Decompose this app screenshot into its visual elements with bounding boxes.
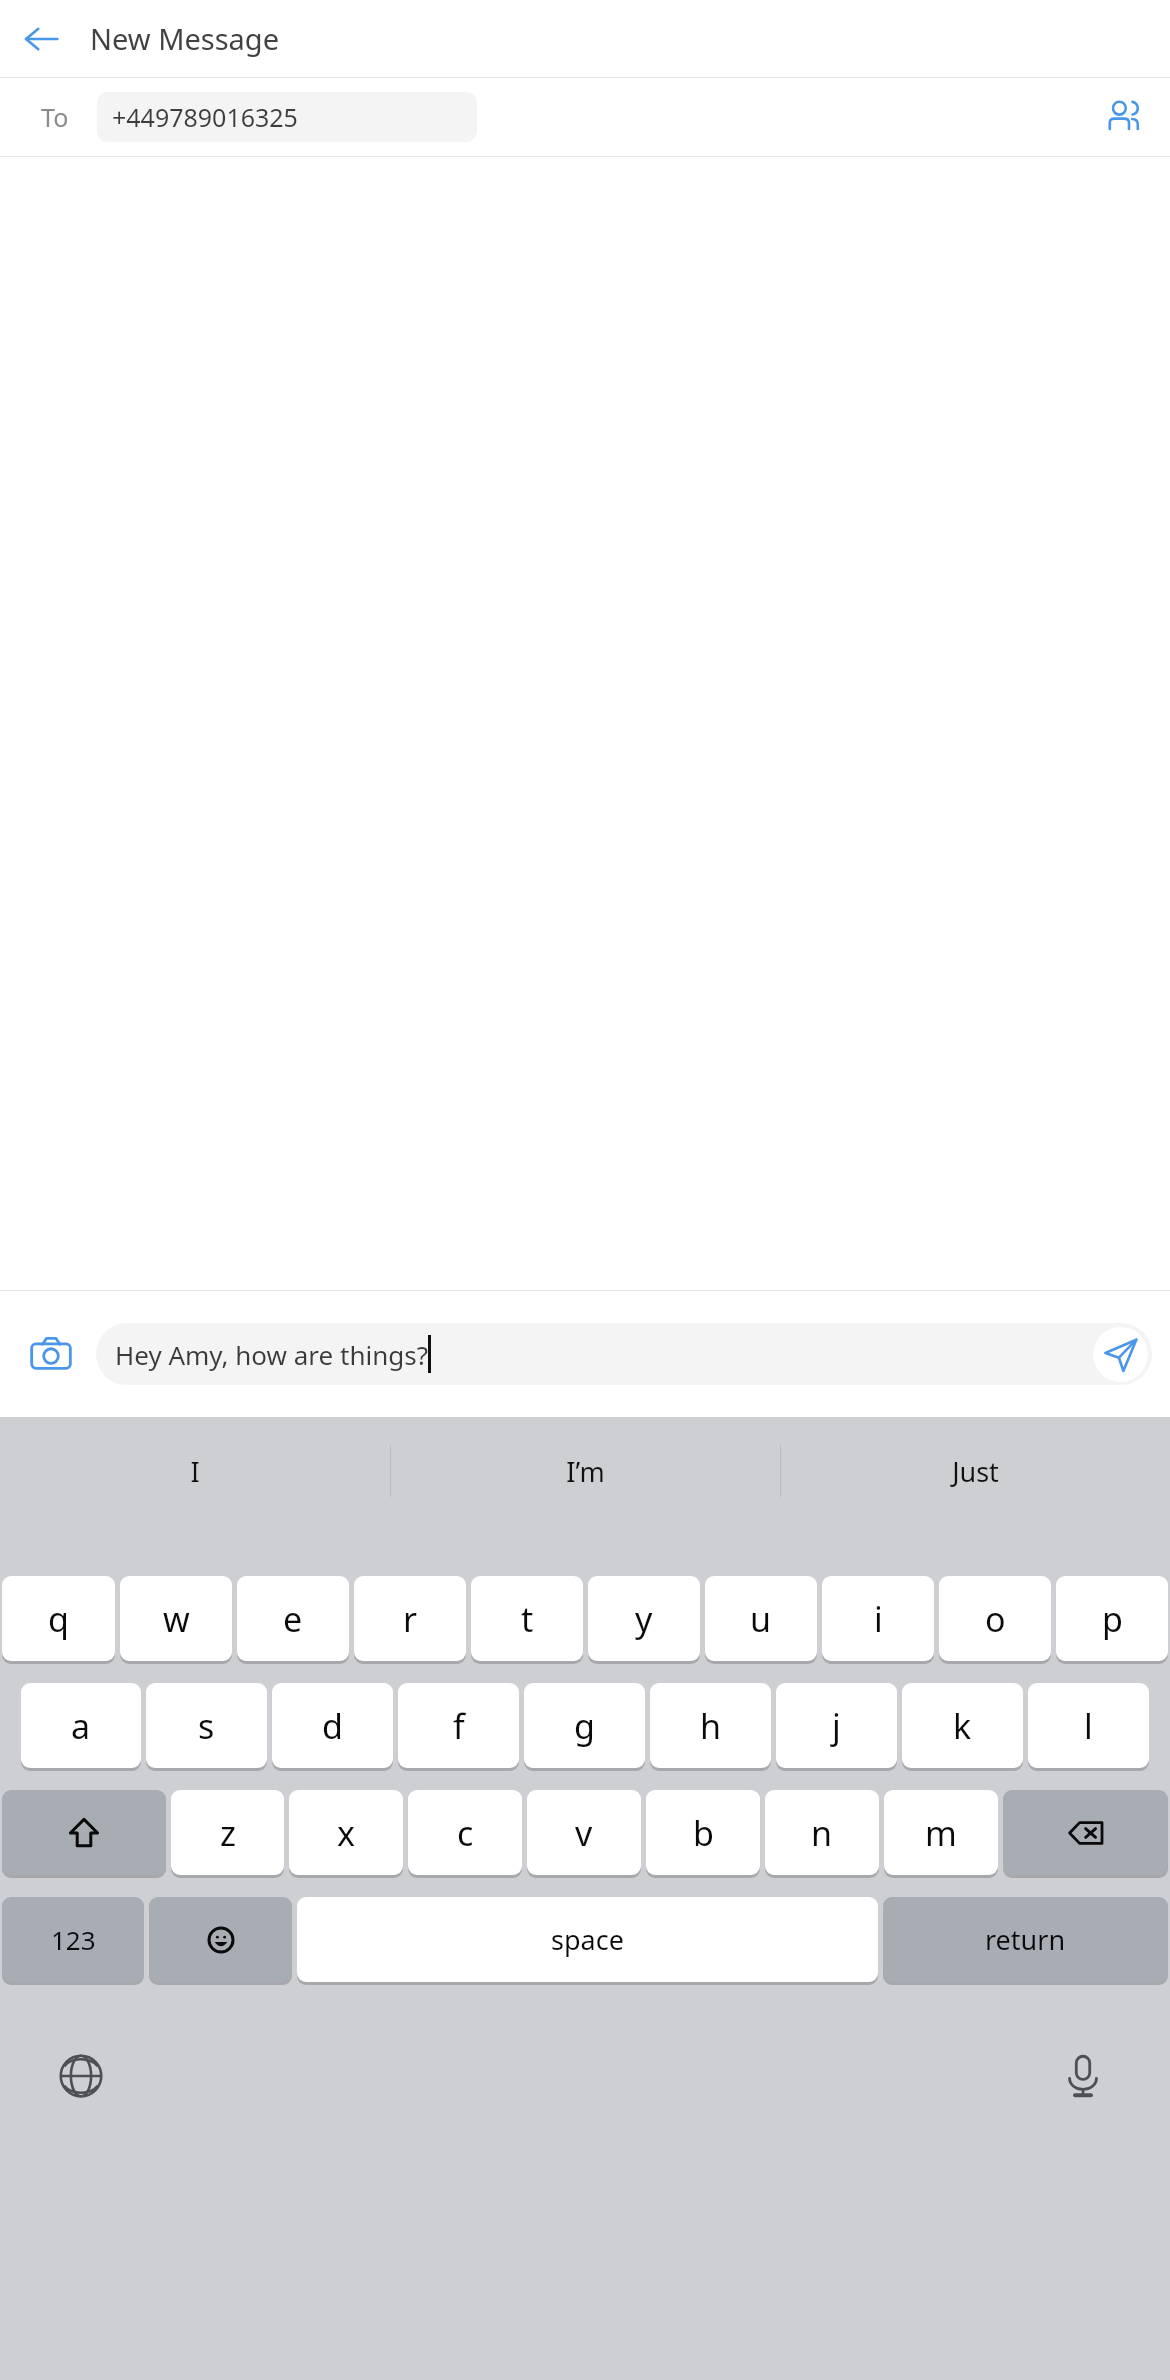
button[interactable]: s	[146, 1683, 267, 1768]
staticText: d	[322, 1703, 343, 1749]
staticText: k	[953, 1703, 972, 1749]
staticText: New Message	[90, 19, 280, 58]
button[interactable]: c	[408, 1790, 522, 1875]
button[interactable]: x	[289, 1790, 403, 1875]
button[interactable]: g	[524, 1683, 645, 1768]
button[interactable]: d	[272, 1683, 393, 1768]
staticText: n	[811, 1810, 833, 1856]
button[interactable]: I	[0, 1417, 390, 1525]
button[interactable]: Change keyboard language	[50, 2045, 112, 2107]
button[interactable]: w	[120, 1576, 232, 1661]
staticText: b	[693, 1810, 714, 1856]
staticText: space	[551, 1921, 624, 1958]
button[interactable]: y	[588, 1576, 700, 1661]
button[interactable]: r	[354, 1576, 466, 1661]
button[interactable]: m	[884, 1790, 998, 1875]
staticText: r	[403, 1596, 418, 1642]
button[interactable]: Just	[781, 1417, 1170, 1525]
button[interactable]: n	[765, 1790, 879, 1875]
button[interactable]: h	[650, 1683, 771, 1768]
button[interactable]: Camera	[20, 1323, 82, 1385]
staticText: +449789016325	[112, 100, 298, 134]
staticText: w	[163, 1596, 190, 1642]
staticText: i	[874, 1596, 883, 1642]
staticText: u	[750, 1596, 772, 1642]
button[interactable]: 123	[2, 1897, 144, 1982]
button[interactable]: t	[471, 1576, 583, 1661]
staticText: o	[985, 1596, 1006, 1642]
button[interactable]: i	[822, 1576, 934, 1661]
staticText: l	[1084, 1703, 1093, 1749]
button[interactable]: q	[2, 1576, 115, 1661]
button[interactable]: v	[527, 1790, 641, 1875]
staticText: z	[220, 1810, 236, 1856]
button[interactable]: return	[883, 1897, 1168, 1982]
button[interactable]: Back	[14, 12, 68, 66]
staticText: I	[190, 1453, 200, 1490]
button[interactable]: j	[776, 1683, 897, 1768]
button[interactable]: o	[939, 1576, 1051, 1661]
staticText: Just	[952, 1453, 999, 1490]
staticText: f	[453, 1703, 465, 1749]
staticText: Hey Amy, how are things?	[115, 1337, 428, 1372]
button[interactable]: Voice input	[1052, 2045, 1114, 2107]
button[interactable]: z	[171, 1790, 284, 1875]
staticText: To	[41, 100, 69, 134]
staticText: 123	[51, 1922, 96, 1957]
button[interactable]: Shift	[2, 1790, 166, 1875]
button[interactable]: Backspace	[1003, 1790, 1168, 1875]
button[interactable]: Choose contacts	[1096, 88, 1154, 146]
button[interactable]: f	[398, 1683, 519, 1768]
button[interactable]: Send	[1093, 1327, 1148, 1382]
staticText: t	[521, 1596, 534, 1642]
button[interactable]: a	[21, 1683, 141, 1768]
staticText: m	[925, 1810, 957, 1856]
button[interactable]: e	[237, 1576, 349, 1661]
staticText: v	[575, 1810, 593, 1856]
staticText: y	[635, 1596, 653, 1642]
staticText: I’m	[566, 1453, 605, 1490]
button[interactable]: space	[297, 1897, 878, 1982]
button[interactable]: Hey Amy, how are things?	[96, 1323, 1152, 1385]
button[interactable]: +449789016325	[97, 92, 477, 142]
staticText: j	[832, 1703, 841, 1749]
staticText: g	[574, 1703, 595, 1749]
staticText: c	[457, 1810, 474, 1856]
staticText: s	[198, 1703, 215, 1749]
staticText: a	[71, 1703, 91, 1749]
staticText: e	[283, 1596, 303, 1642]
staticText: q	[48, 1596, 69, 1642]
staticText: x	[337, 1810, 355, 1856]
staticText: return	[985, 1921, 1066, 1958]
staticText: p	[1102, 1596, 1123, 1642]
staticText: h	[700, 1703, 722, 1749]
button[interactable]: Emoji	[149, 1897, 292, 1982]
button[interactable]: k	[902, 1683, 1023, 1768]
button[interactable]: b	[646, 1790, 760, 1875]
button[interactable]: I’m	[391, 1417, 780, 1525]
button[interactable]: l	[1028, 1683, 1149, 1768]
button[interactable]: u	[705, 1576, 817, 1661]
button[interactable]: p	[1056, 1576, 1168, 1661]
